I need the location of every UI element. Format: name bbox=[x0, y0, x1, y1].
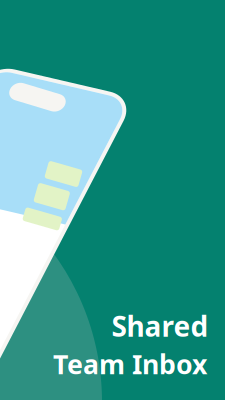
staticText: Team Inbox bbox=[53, 346, 207, 382]
staticText: Shared bbox=[111, 307, 208, 345]
